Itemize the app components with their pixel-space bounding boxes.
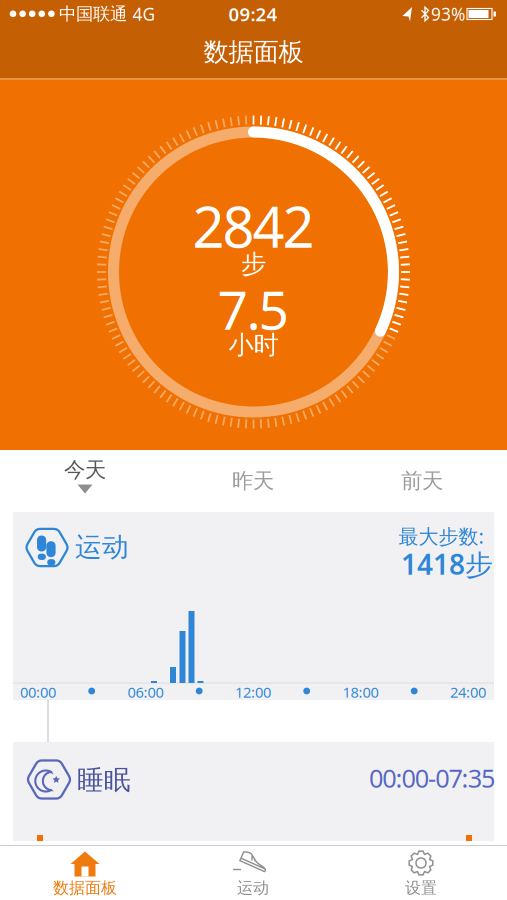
- staticText: 运动: [237, 878, 269, 898]
- staticText: 数据面板: [203, 36, 303, 67]
- button[interactable]: 数据面板: [1, 846, 169, 900]
- staticText: 7.5: [217, 274, 289, 344]
- staticText: 00:00-07:35: [369, 761, 495, 795]
- button[interactable]: 前天: [382, 450, 462, 512]
- staticText: 运动: [75, 531, 129, 563]
- button[interactable]: 今天: [45, 450, 125, 512]
- staticText: 18:00: [342, 682, 378, 702]
- staticText: 2842: [192, 189, 314, 263]
- staticText: 前天: [401, 468, 443, 494]
- staticText: 1418步: [401, 545, 493, 583]
- button[interactable]: 运动: [169, 846, 337, 900]
- staticText: 06:00: [127, 682, 163, 702]
- staticText: 最大步数:: [398, 523, 483, 549]
- staticText: 昨天: [232, 468, 274, 494]
- staticText: 00:00: [20, 682, 56, 702]
- staticText: 4G: [132, 2, 155, 25]
- staticText: 24:00: [450, 682, 486, 702]
- staticText: 睡眠: [77, 764, 131, 796]
- staticText: 今天: [64, 457, 106, 483]
- staticText: 93%: [431, 2, 465, 25]
- staticText: 09:24: [228, 2, 277, 26]
- staticText: 步: [241, 248, 266, 279]
- staticText: 中国联通: [59, 3, 127, 25]
- button[interactable]: 昨天: [213, 450, 293, 512]
- button[interactable]: 设置: [337, 846, 505, 900]
- staticText: 小时: [228, 329, 278, 360]
- staticText: 设置: [405, 878, 437, 898]
- staticText: 数据面板: [53, 878, 117, 898]
- staticText: 12:00: [235, 682, 271, 702]
